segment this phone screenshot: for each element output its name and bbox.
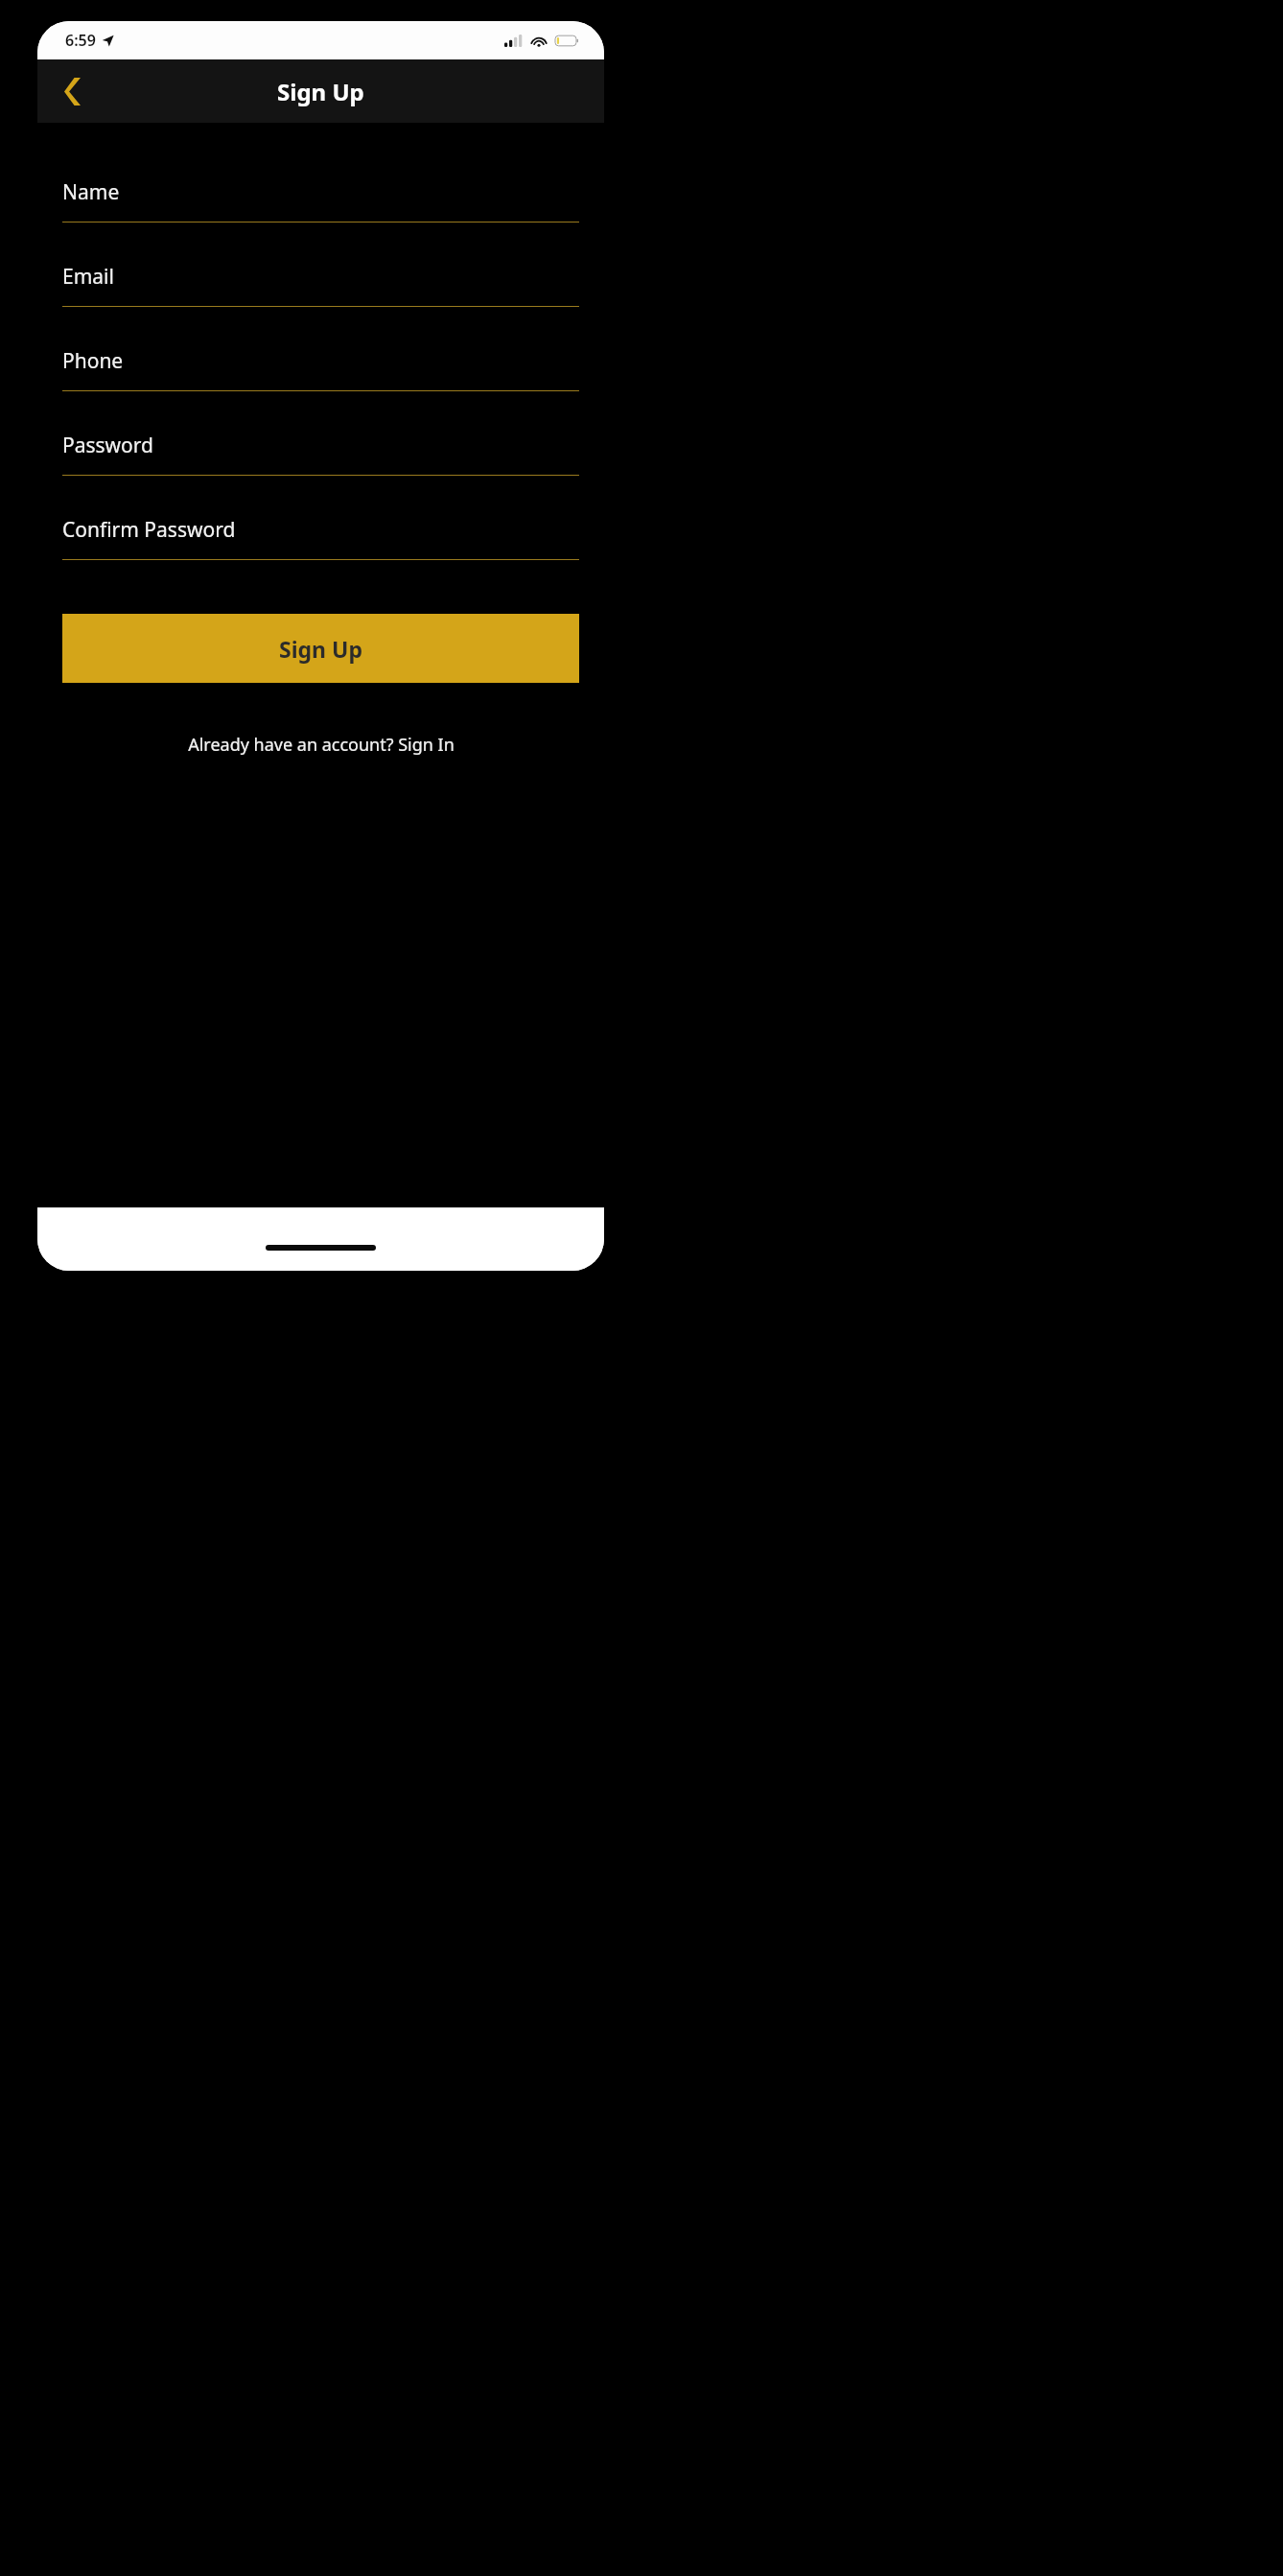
staticText: Sign Up: [277, 76, 364, 107]
staticText: Password: [62, 432, 153, 459]
button[interactable]: Confirm Password: [62, 503, 579, 587]
staticText: Email: [62, 263, 114, 291]
staticText: Sign Up: [279, 634, 362, 664]
staticText: Name: [62, 178, 120, 206]
button[interactable]: Already have an account? Sign In: [62, 733, 579, 757]
staticText: 6:59: [65, 30, 96, 51]
button[interactable]: Back: [49, 68, 95, 114]
button[interactable]: Sign Up: [62, 614, 579, 683]
staticText: Already have an account? Sign In: [188, 733, 455, 757]
button[interactable]: Phone: [62, 334, 579, 418]
button[interactable]: Password: [62, 418, 579, 503]
button[interactable]: Email: [62, 249, 579, 334]
button[interactable]: Name: [62, 165, 579, 249]
staticText: Confirm Password: [62, 516, 236, 544]
staticText: Phone: [62, 347, 124, 375]
